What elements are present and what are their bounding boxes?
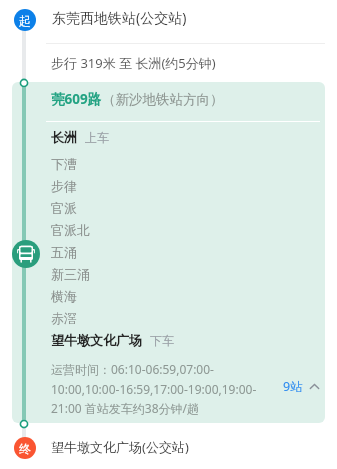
staticText: 长洲 <box>51 129 77 145</box>
staticText: 莞609路 <box>51 90 102 108</box>
staticText: 步律 <box>51 178 77 194</box>
staticText: 运营时间：06:10-06:59,07:00- 10:00,10:00-16:5… <box>51 361 266 416</box>
button[interactable]: 东莞西地铁站(公交站) <box>52 8 187 27</box>
staticText: 终 <box>19 441 31 456</box>
button[interactable]: Bus route <box>12 240 40 268</box>
staticText: 横海 <box>51 288 77 304</box>
button[interactable] <box>12 82 325 423</box>
button[interactable]: 望牛墩文化广场(公交站) <box>51 438 189 456</box>
button[interactable]: 9站 <box>283 378 320 395</box>
staticText: 9站 <box>283 378 303 395</box>
staticText: （新沙地铁站方向） <box>102 91 224 108</box>
staticText: 上车 <box>85 130 109 145</box>
staticText: 新三涌 <box>51 266 90 282</box>
staticText: 官派北 <box>51 222 90 238</box>
staticText: 下车 <box>150 333 174 348</box>
staticText: 五涌 <box>51 244 77 260</box>
staticText: 步行 319米 至 长洲(约5分钟) <box>51 54 216 72</box>
staticText: 望牛墩文化广场 <box>51 332 142 348</box>
staticText: 下漕 <box>51 156 77 172</box>
staticText: 官派 <box>51 200 77 216</box>
staticText: 赤滘 <box>51 310 77 326</box>
staticText: 起 <box>19 13 31 28</box>
